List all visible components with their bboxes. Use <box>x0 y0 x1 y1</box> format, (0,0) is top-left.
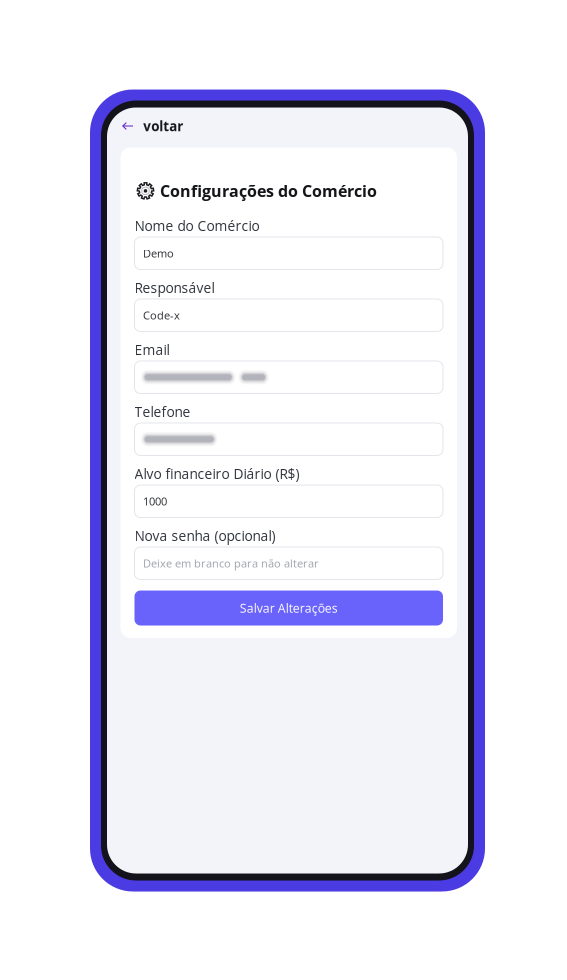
staticText: Email <box>134 340 169 359</box>
staticText: Configurações do Comércio <box>160 180 377 202</box>
staticText: Alvo financeiro Diário (R$) <box>134 464 299 483</box>
staticText: Code-x <box>143 308 180 323</box>
staticText: Deixe em branco para não alterar <box>143 556 319 571</box>
staticText: voltar <box>143 117 183 135</box>
staticText: Demo <box>143 246 174 261</box>
button[interactable]: Salvar Alterações <box>134 590 443 625</box>
staticText: 1000 <box>143 494 167 509</box>
staticText: Salvar Alterações <box>240 600 338 616</box>
staticText: Telefone <box>134 402 190 421</box>
staticText: Responsável <box>134 278 214 297</box>
staticText: Nome do Comércio <box>134 216 259 235</box>
button[interactable]: voltar <box>107 107 468 144</box>
staticText: Nova senha (opcional) <box>134 526 275 545</box>
